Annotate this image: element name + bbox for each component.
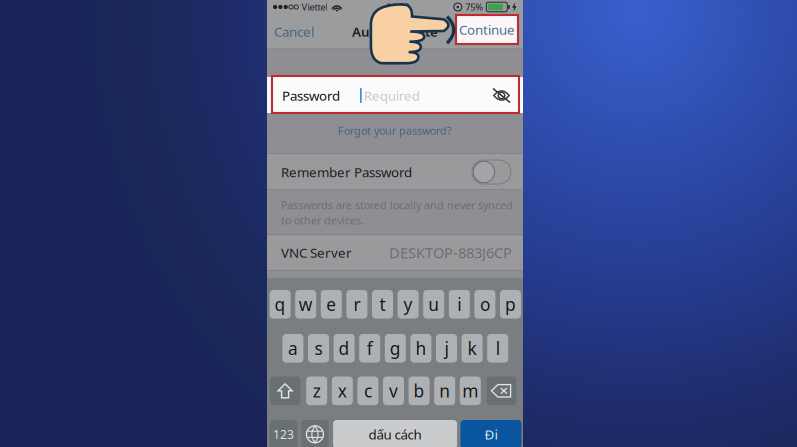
staticText: 123 bbox=[273, 426, 294, 442]
staticText: DESKTOP-883J6CP bbox=[389, 243, 512, 262]
staticText: 21:58 bbox=[386, 1, 409, 13]
button[interactable]: a bbox=[282, 334, 303, 363]
staticText: a bbox=[288, 337, 298, 360]
staticText: x bbox=[338, 379, 347, 402]
staticText: dấu cách bbox=[369, 425, 422, 443]
button[interactable]: s bbox=[308, 334, 329, 363]
staticText: h bbox=[415, 337, 426, 360]
button[interactable]: r bbox=[346, 290, 367, 319]
staticText: p bbox=[505, 293, 516, 316]
button[interactable]: z bbox=[306, 376, 327, 405]
staticText: b bbox=[414, 379, 425, 402]
staticText: Remember Password bbox=[281, 163, 412, 181]
staticText: f bbox=[367, 337, 373, 360]
button[interactable]: k bbox=[462, 334, 483, 363]
button[interactable]: 123 bbox=[270, 420, 298, 447]
staticText: c bbox=[364, 379, 372, 402]
button[interactable]: Forgot your password? bbox=[332, 119, 458, 142]
staticText: s bbox=[314, 337, 322, 360]
staticText: r bbox=[353, 293, 360, 316]
button[interactable]: n bbox=[434, 376, 455, 405]
button[interactable]: l bbox=[487, 334, 508, 363]
staticText: d bbox=[339, 337, 350, 360]
staticText: Authenticate bbox=[352, 23, 438, 40]
staticText: k bbox=[468, 337, 477, 360]
staticText: 75% bbox=[465, 1, 483, 13]
button[interactable]: Shift bbox=[270, 376, 301, 405]
staticText: y bbox=[404, 293, 413, 316]
button[interactable]: q bbox=[270, 290, 291, 319]
staticText: v bbox=[389, 379, 398, 402]
staticText: m bbox=[462, 379, 478, 402]
button[interactable]: Cancel bbox=[267, 17, 321, 46]
staticText: Passwords are stored locally and never s… bbox=[281, 198, 513, 212]
button[interactable]: Password bbox=[267, 77, 523, 114]
staticText: Required bbox=[364, 87, 420, 104]
button[interactable]: b bbox=[409, 376, 430, 405]
button[interactable]: Delete bbox=[486, 376, 516, 405]
staticText: n bbox=[439, 379, 450, 402]
button[interactable]: x bbox=[332, 376, 353, 405]
button[interactable]: dấu cách bbox=[333, 420, 457, 447]
button[interactable]: i bbox=[449, 290, 470, 319]
staticText: z bbox=[313, 379, 321, 402]
button[interactable]: t bbox=[372, 290, 393, 319]
button[interactable]: Remember Password bbox=[472, 160, 511, 184]
button[interactable]: p bbox=[500, 290, 521, 319]
staticText: o bbox=[480, 293, 490, 316]
staticText: Viettel bbox=[301, 1, 327, 13]
button[interactable]: w bbox=[295, 290, 316, 319]
button[interactable]: h bbox=[410, 334, 431, 363]
button[interactable]: Show password bbox=[492, 87, 511, 103]
button[interactable]: m bbox=[460, 376, 481, 405]
staticText: q bbox=[275, 293, 286, 316]
button[interactable]: Continue bbox=[456, 15, 518, 44]
staticText: Forgot your password? bbox=[338, 123, 452, 138]
button[interactable]: VNC Server bbox=[267, 235, 523, 270]
button[interactable]: y bbox=[398, 290, 419, 319]
button[interactable]: v bbox=[383, 376, 404, 405]
staticText: Đi bbox=[484, 425, 497, 443]
staticText: u bbox=[428, 293, 439, 316]
button[interactable]: Đi bbox=[460, 420, 521, 447]
button[interactable]: j bbox=[436, 334, 457, 363]
staticText: j bbox=[444, 337, 448, 360]
staticText: e bbox=[326, 293, 336, 316]
staticText: g bbox=[390, 337, 401, 360]
button[interactable]: o bbox=[474, 290, 495, 319]
staticText: w bbox=[299, 293, 313, 316]
staticText: i bbox=[457, 293, 461, 316]
staticText: Continue bbox=[459, 21, 515, 38]
staticText: to other devices. bbox=[281, 213, 364, 227]
button[interactable]: c bbox=[357, 376, 378, 405]
button[interactable]: e bbox=[321, 290, 342, 319]
button[interactable]: f bbox=[359, 334, 380, 363]
staticText: VNC Server bbox=[281, 244, 352, 261]
staticText: Cancel bbox=[274, 23, 314, 40]
staticText: l bbox=[496, 337, 500, 360]
button[interactable]: d bbox=[334, 334, 355, 363]
staticText: t bbox=[379, 293, 385, 316]
button[interactable]: u bbox=[423, 290, 444, 319]
button[interactable]: Remember Password bbox=[267, 154, 523, 190]
staticText: Password bbox=[282, 87, 340, 104]
button[interactable]: g bbox=[385, 334, 406, 363]
button[interactable]: Next keyboard bbox=[301, 420, 329, 447]
